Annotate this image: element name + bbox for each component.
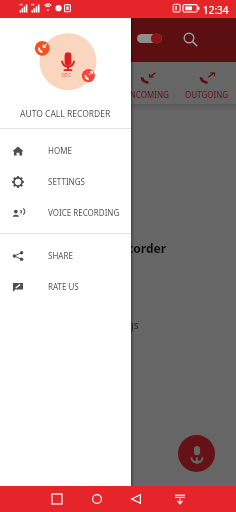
button[interactable]: Record	[178, 435, 215, 472]
button[interactable]: Search	[176, 25, 204, 53]
button[interactable]: Hide keyboard	[169, 488, 191, 510]
staticText: Auto Call Recorder	[55, 240, 167, 256]
button[interactable]: OUTGOING	[177, 62, 236, 104]
button[interactable]: Home	[86, 488, 108, 510]
staticText: 12:34	[203, 3, 229, 17]
staticText: SETTINGS	[48, 176, 85, 187]
button[interactable]: Recent apps	[46, 488, 68, 510]
staticText: VOICE RECORDING	[48, 207, 120, 218]
staticText: No recordings	[72, 318, 139, 332]
staticText: INCOMING	[127, 89, 169, 100]
button[interactable]: SETTINGS	[0, 166, 131, 197]
staticText: HOME	[48, 145, 72, 156]
staticText: RATE US	[48, 281, 79, 292]
button[interactable]: ALL	[0, 62, 59, 104]
button[interactable]: RATE US	[0, 271, 131, 302]
button[interactable]: SHARE	[0, 240, 131, 271]
staticText: REC	[62, 72, 72, 79]
button[interactable]: Auto record toggle	[137, 27, 162, 49]
button[interactable]: Back	[125, 488, 147, 510]
staticText: SHARE	[48, 250, 73, 261]
staticText: AUTO CALL RECORDER	[20, 108, 111, 120]
button[interactable]: MISSED	[59, 62, 118, 104]
button[interactable]: VOICE RECORDING	[0, 197, 131, 228]
staticText: OUTGOING	[185, 89, 229, 100]
button[interactable]: HOME	[0, 135, 131, 166]
button[interactable]: INCOMING	[118, 62, 177, 104]
